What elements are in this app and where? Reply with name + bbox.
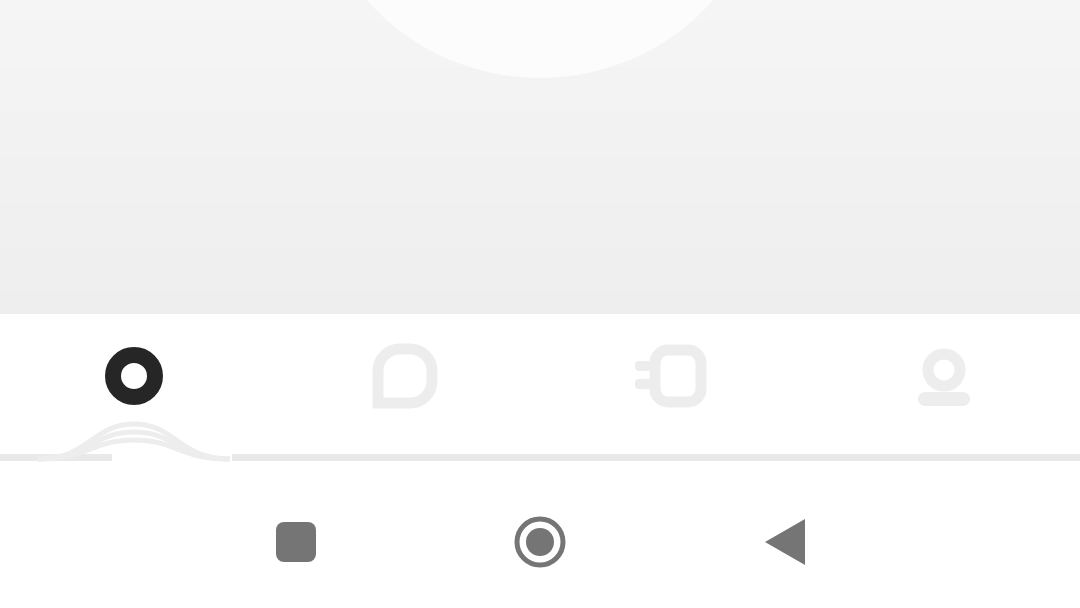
button[interactable]: Contacts — [590, 314, 760, 438]
button[interactable]: Profile — [859, 314, 1029, 438]
button[interactable]: Chats — [320, 314, 490, 438]
button[interactable]: Home — [49, 314, 219, 438]
button[interactable]: Back — [741, 486, 829, 598]
button[interactable]: Home — [496, 486, 584, 598]
button[interactable]: Recent apps — [251, 486, 339, 598]
